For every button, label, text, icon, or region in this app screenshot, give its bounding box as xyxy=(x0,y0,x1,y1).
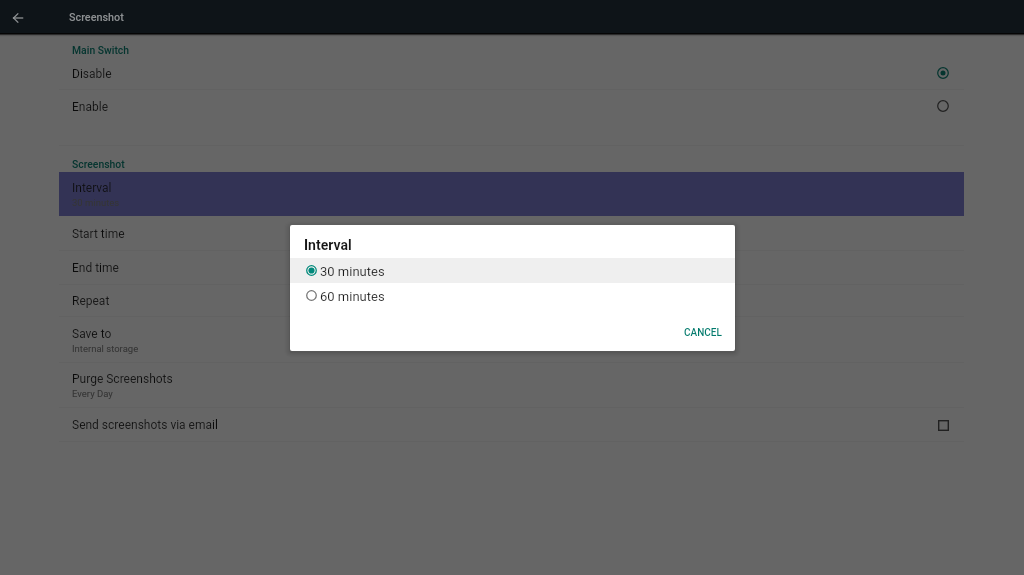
button[interactable]: 60 minutes xyxy=(290,283,735,308)
staticText: Send screenshots via email xyxy=(72,418,218,432)
staticText: Every Day xyxy=(72,388,113,399)
button[interactable]: Start time xyxy=(59,217,964,251)
staticText: Internal storage xyxy=(72,343,139,354)
button[interactable]: End time xyxy=(59,251,964,284)
staticText: Screenshot xyxy=(72,158,125,170)
button[interactable]: Save to xyxy=(59,317,964,363)
staticText: Interval xyxy=(72,181,112,195)
button[interactable]: Back xyxy=(4,4,31,31)
button[interactable]: Disable xyxy=(59,57,964,90)
button[interactable]: Enable xyxy=(59,90,964,123)
button[interactable]: 30 minutes xyxy=(290,258,735,283)
button[interactable]: Send screenshots via email xyxy=(59,408,964,441)
staticText: Interval xyxy=(304,237,352,253)
staticText: Repeat xyxy=(72,294,110,308)
staticText: CANCEL xyxy=(684,327,722,339)
staticText: End time xyxy=(72,261,119,275)
staticText: Main Switch xyxy=(72,44,130,56)
button[interactable]: Interval xyxy=(59,172,964,216)
staticText: Start time xyxy=(72,227,125,241)
staticText: Enable xyxy=(72,100,108,114)
button[interactable]: CANCEL xyxy=(675,322,731,344)
staticText: 30 minutes xyxy=(72,197,120,208)
staticText: Save to xyxy=(72,327,112,341)
button[interactable]: Purge Screenshots xyxy=(59,364,964,407)
staticText: 30 minutes xyxy=(320,264,385,279)
staticText: Disable xyxy=(72,67,112,81)
staticText: Screenshot xyxy=(69,11,124,24)
staticText: Purge Screenshots xyxy=(72,372,173,386)
button[interactable]: Repeat xyxy=(59,284,964,317)
staticText: 60 minutes xyxy=(320,289,385,304)
